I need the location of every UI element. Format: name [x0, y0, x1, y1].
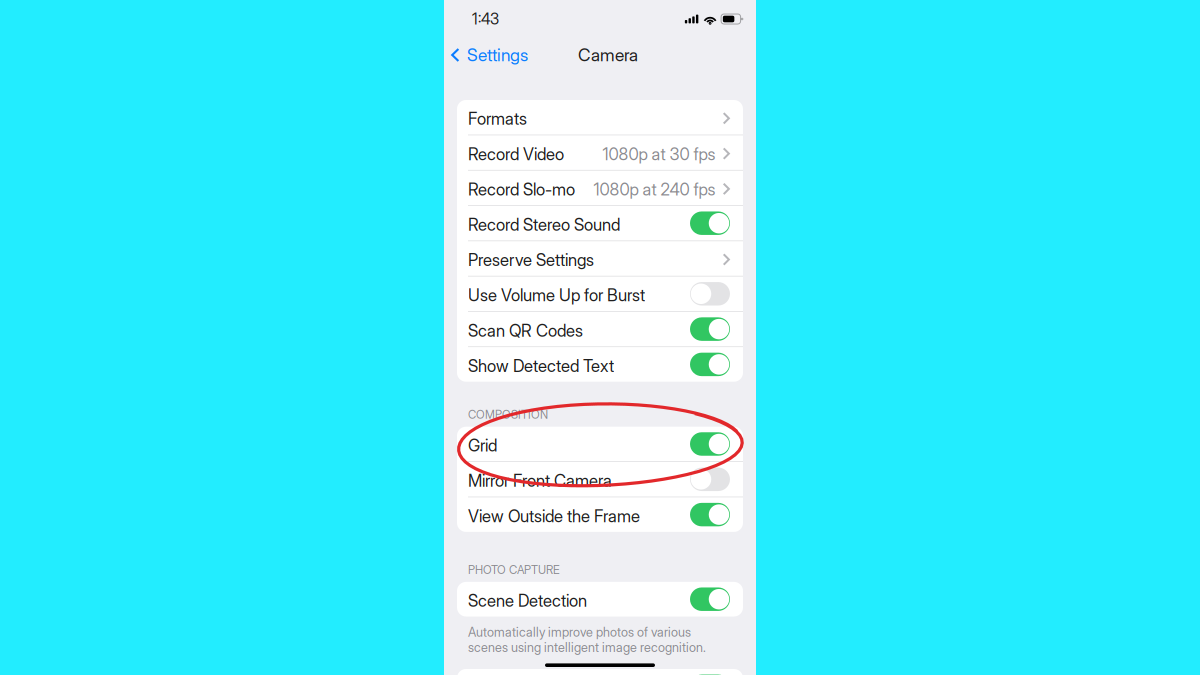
staticText: Preserve Settings [468, 250, 594, 270]
button[interactable]: Use Volume Up for Burst [457, 276, 743, 311]
staticText: Show Detected Text [468, 356, 614, 376]
staticText: Scene Detection [468, 591, 587, 611]
button[interactable]: Scene Detection [457, 582, 743, 616]
staticText: COMPOSITION [468, 408, 548, 422]
button[interactable]: View Outside the Frame [457, 497, 743, 532]
staticText: PHOTO CAPTURE [468, 563, 560, 577]
staticText: Formats [468, 109, 527, 129]
staticText: Record Stereo Sound [468, 215, 620, 235]
staticText: Record Video [468, 144, 564, 164]
button[interactable]: Scan QR Codes [457, 312, 743, 346]
staticText: 1080p at 30 fps [603, 144, 716, 164]
staticText: Record Slo-mo [468, 179, 575, 199]
staticText: 1:43 [472, 10, 499, 28]
staticText: 1080p at 240 fps [594, 179, 716, 199]
staticText: View Outside the Frame [468, 506, 640, 526]
button[interactable]: Mirror Front Camera [457, 462, 743, 497]
button[interactable]: Show Detected Text [457, 347, 743, 382]
staticText: Camera [578, 44, 638, 65]
button[interactable]: Record Slo-mo [457, 171, 743, 205]
button[interactable]: Record Video [457, 135, 743, 170]
staticText: Grid [468, 435, 497, 456]
staticText: Settings [467, 44, 528, 65]
staticText: Mirror Front Camera [468, 471, 612, 491]
button[interactable]: Record Stereo Sound [457, 206, 743, 240]
staticText: Use Volume Up for Burst [468, 285, 645, 305]
staticText: Scan QR Codes [468, 320, 583, 341]
button[interactable]: Settings [444, 38, 537, 72]
button[interactable]: Grid [457, 427, 743, 461]
button[interactable]: Lens Correction [457, 669, 743, 675]
button[interactable]: Formats [457, 100, 743, 135]
button[interactable]: Preserve Settings [457, 241, 743, 276]
staticText: Automatically improve photos of various … [468, 624, 706, 655]
